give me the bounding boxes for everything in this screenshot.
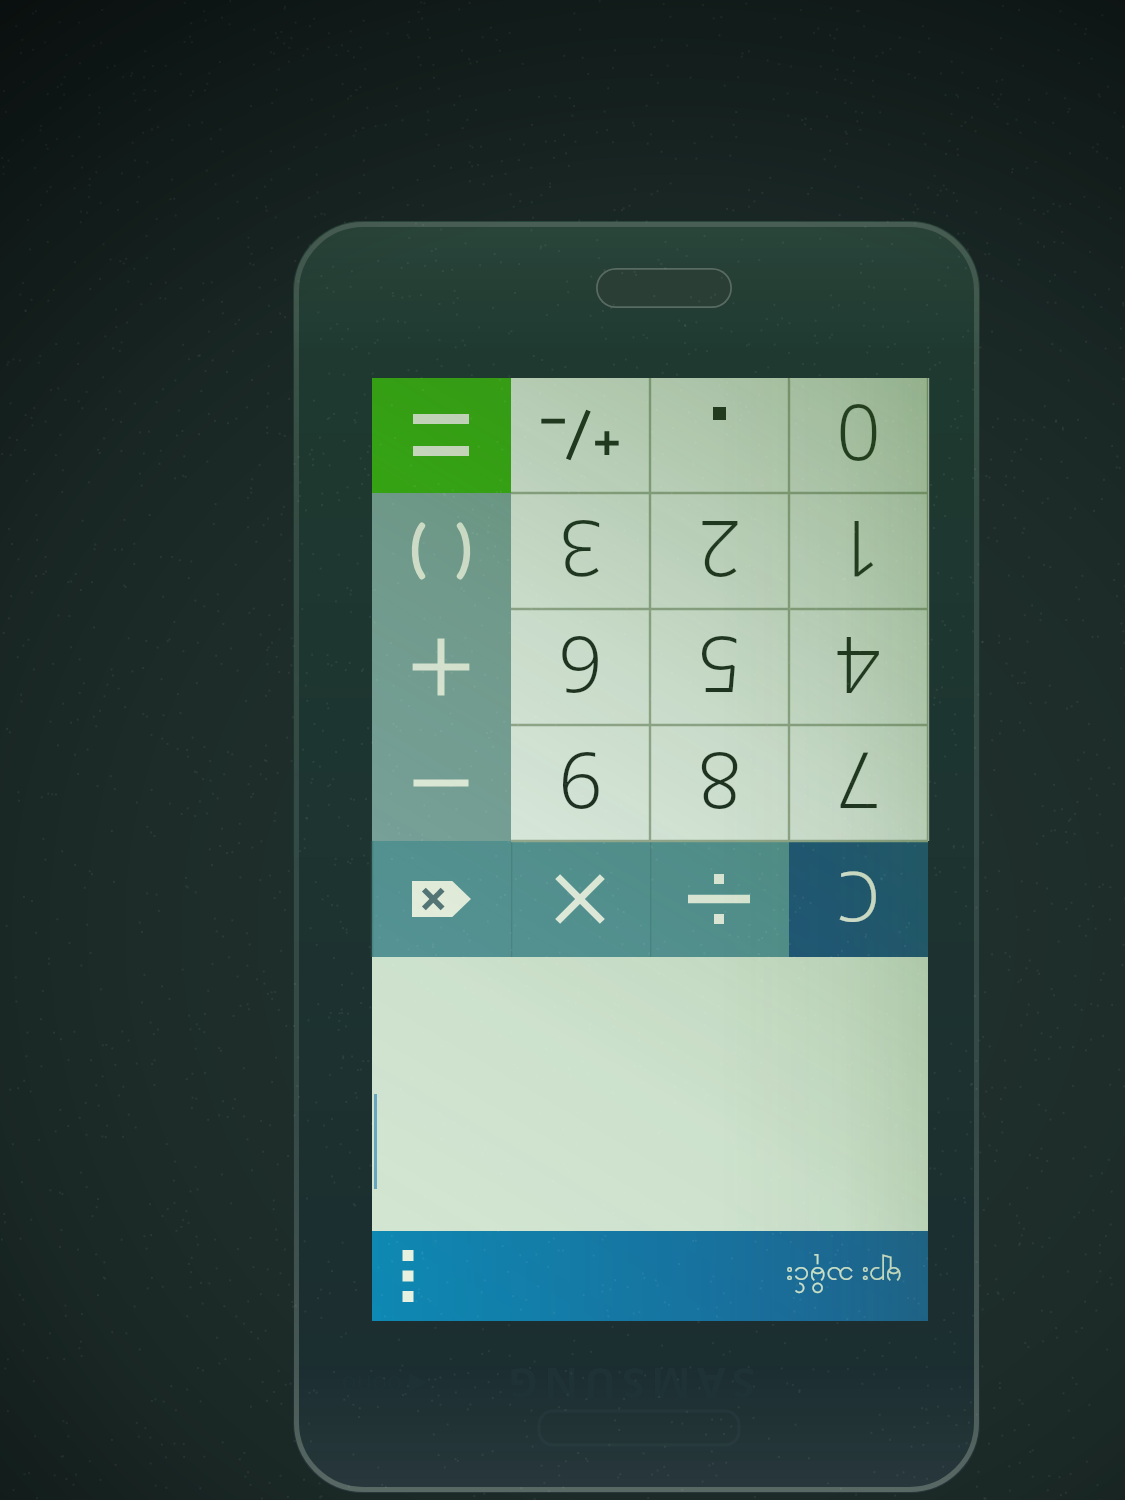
button[interactable]: 9	[511, 725, 650, 841]
staticText: 5	[697, 614, 742, 720]
other: Multiply	[537, 856, 623, 942]
button[interactable]: 2	[650, 493, 789, 609]
button[interactable]: များ သမိုင်း	[785, 1253, 902, 1298]
other: Plus	[398, 624, 484, 710]
other: Plus minus sign	[538, 406, 622, 464]
button[interactable]: Backspace	[372, 841, 511, 957]
button[interactable]: Minus	[372, 725, 511, 841]
button[interactable]: 3	[511, 493, 650, 609]
button[interactable]: 0	[789, 378, 928, 493]
button[interactable]: Divide	[650, 841, 789, 957]
button[interactable]: More options	[372, 1231, 444, 1321]
other: Equals	[398, 392, 484, 478]
staticText: 8	[697, 730, 742, 836]
staticText: 1	[836, 498, 881, 604]
button[interactable]: 6	[511, 609, 650, 725]
staticText: 3	[558, 498, 603, 604]
staticText: 9	[558, 730, 603, 836]
staticText: 4	[836, 614, 881, 720]
button[interactable]: Equals	[372, 378, 511, 493]
button[interactable]: C	[789, 841, 928, 957]
button[interactable]: Plus	[372, 609, 511, 725]
staticText: C	[837, 852, 880, 945]
button[interactable]: 4	[789, 609, 928, 725]
button[interactable]: Plus minus sign	[511, 378, 650, 493]
button[interactable]: Decimal point	[650, 378, 789, 493]
other: Divide	[676, 856, 762, 942]
button[interactable]: Parentheses	[372, 493, 511, 609]
button[interactable]: 1	[789, 493, 928, 609]
button[interactable]: 5	[650, 609, 789, 725]
button[interactable]: 8	[650, 725, 789, 841]
staticText: 6	[558, 614, 603, 720]
other: Minus	[398, 740, 484, 826]
staticText: 0	[836, 382, 881, 488]
staticText: 2	[697, 498, 742, 604]
other: Backspace	[412, 881, 471, 917]
staticText: 7	[836, 730, 881, 836]
other: Parentheses	[414, 519, 468, 583]
button[interactable]: 7	[789, 725, 928, 841]
button[interactable]: Multiply	[511, 841, 650, 957]
